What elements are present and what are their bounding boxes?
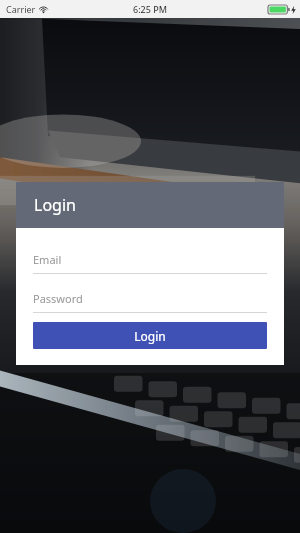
staticText: Password [33, 291, 83, 306]
staticText: Login [34, 194, 76, 216]
button[interactable]: Login [33, 322, 267, 349]
button[interactable]: Email [33, 252, 267, 274]
staticText: 6:25 PM [133, 3, 167, 15]
button[interactable]: Password [33, 291, 267, 313]
staticText: Login [134, 328, 166, 344]
staticText: Carrier [6, 3, 36, 15]
staticText: Email [33, 252, 62, 267]
